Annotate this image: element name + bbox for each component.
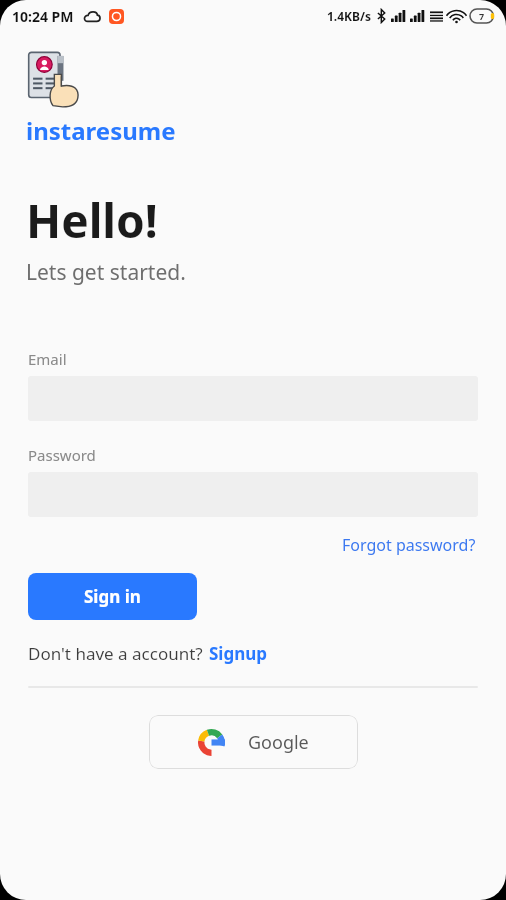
staticText: Lets get started. [26,258,186,287]
staticText: Password [28,445,96,465]
other: Google [198,729,225,756]
staticText: Don't have a account? [28,642,208,665]
staticText: 7 [479,10,485,22]
staticText: Signup [209,642,268,665]
button[interactable]: Signup [208,640,269,667]
button[interactable]: Sign in [28,573,197,620]
staticText: 1.4KB/s [327,8,372,24]
staticText: Forgot password? [342,534,476,556]
staticText: Sign in [84,585,141,608]
staticText: Hello! [26,189,158,252]
staticText: instaresume [26,114,176,147]
button[interactable]: Google [149,715,358,769]
staticText: 10:24 PM [12,7,74,26]
button[interactable]: Forgot password? [340,531,478,559]
staticText: Email [28,349,67,369]
staticText: Google [248,730,309,755]
